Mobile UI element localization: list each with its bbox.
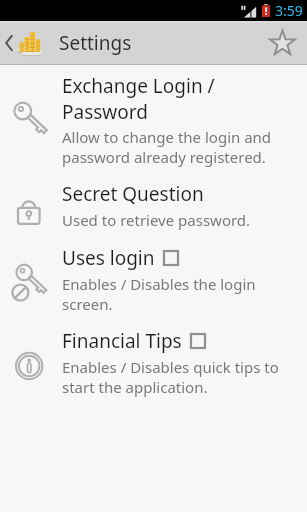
staticText: Enables / Disables the login screen. — [62, 274, 256, 314]
button[interactable]: Secret Question — [0, 173, 307, 237]
button[interactable]: Favorite — [257, 28, 307, 58]
button[interactable]: Uses login — [0, 237, 307, 320]
button[interactable]: Back — [0, 28, 49, 58]
button[interactable]: Toggle Uses login — [164, 251, 178, 265]
button[interactable]: Financial Tips — [0, 320, 307, 403]
staticText: Allow to change the login and password a… — [62, 127, 272, 167]
staticText: Settings — [59, 30, 132, 56]
staticText: Uses login — [62, 245, 155, 271]
button[interactable]: Exchange Login / Password — [0, 65, 307, 173]
staticText: Financial Tips — [62, 328, 182, 354]
staticText: Enables / Disables quick tips to start t… — [62, 357, 279, 397]
staticText: Secret Question — [62, 181, 204, 207]
staticText: Used to retrieve password. — [62, 210, 251, 230]
staticText: Exchange Login / Password — [62, 73, 215, 124]
button[interactable]: Toggle Financial Tips — [191, 334, 205, 348]
staticText: 3:59 — [275, 1, 303, 20]
